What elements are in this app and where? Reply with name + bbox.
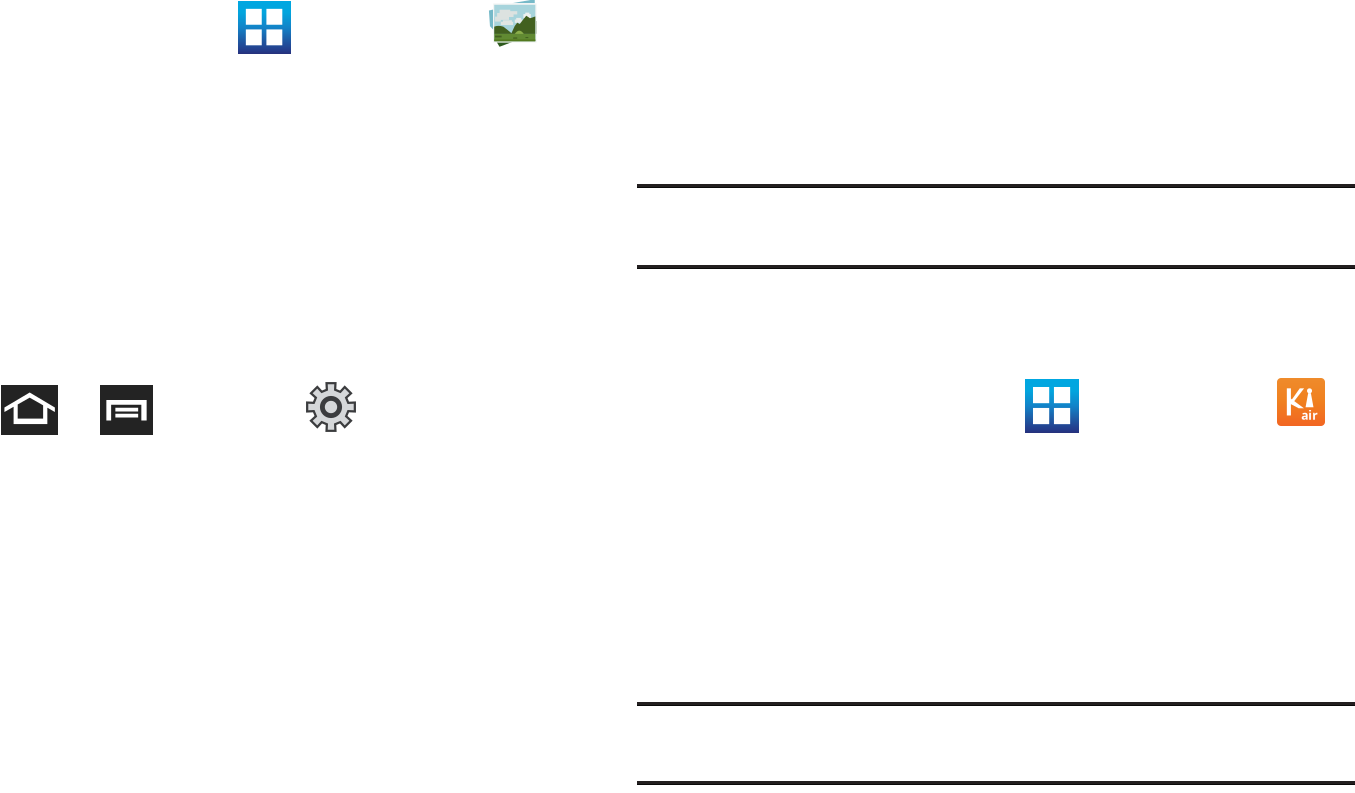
button[interactable]: Ki air — [1277, 378, 1325, 426]
button[interactable]: All apps — [1025, 379, 1079, 433]
staticText: air — [1301, 407, 1317, 423]
button[interactable]: Home — [1, 385, 58, 435]
button[interactable]: Gallery — [486, 0, 539, 48]
button[interactable]: Recent apps — [100, 385, 153, 435]
button[interactable]: Settings — [306, 382, 356, 432]
button[interactable]: All apps — [238, 1, 291, 54]
